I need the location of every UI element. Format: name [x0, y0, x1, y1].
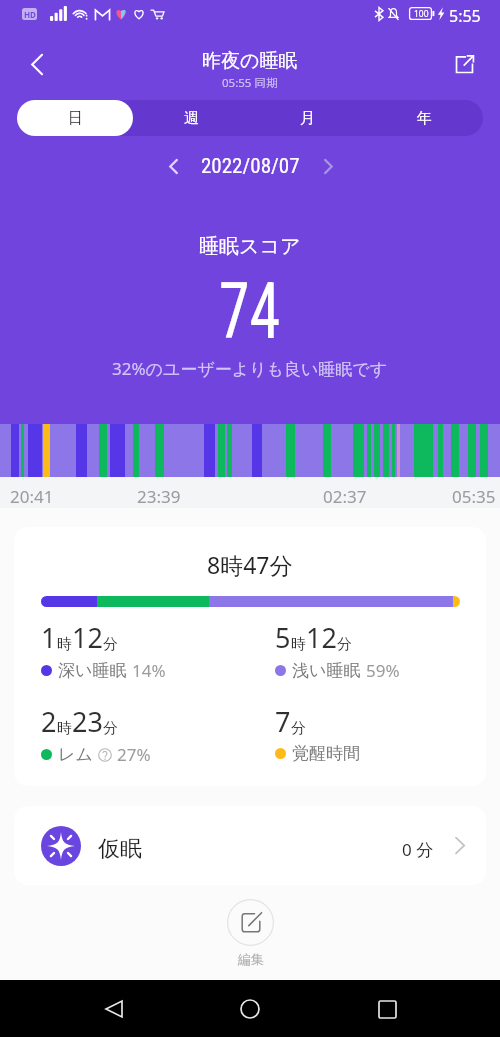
staticText: 分	[103, 635, 118, 654]
staticText: 睡眠スコア	[199, 234, 301, 259]
staticText: 5	[275, 619, 291, 656]
staticText: 32%のユーザーよりも良い睡眠です	[112, 357, 388, 380]
staticText: 分	[103, 719, 118, 738]
button[interactable]: 編集	[227, 899, 274, 967]
button[interactable]: 週	[133, 100, 249, 136]
button[interactable]: Recents	[364, 986, 410, 1032]
staticText: 14%	[132, 659, 166, 682]
staticText: 100	[414, 8, 429, 20]
staticText: 日	[68, 109, 83, 128]
staticText: 仮眠	[98, 835, 142, 863]
staticText: 浅い睡眠	[292, 660, 361, 681]
button[interactable]: Share	[442, 42, 486, 86]
staticText: 深い睡眠	[58, 660, 127, 681]
button[interactable]: 月	[249, 100, 366, 136]
staticText: 2022/08/07	[201, 154, 300, 179]
staticText: 週	[184, 109, 199, 128]
staticText: 7	[275, 703, 291, 740]
staticText: 1	[41, 619, 57, 656]
staticText: 74	[219, 266, 281, 357]
button[interactable]: Next day	[310, 148, 346, 184]
staticText: 5:55	[449, 5, 481, 27]
staticText: 05:55 同期	[222, 75, 278, 91]
staticText: 20:41	[10, 485, 54, 508]
staticText: 27%	[117, 743, 151, 766]
staticText: 2	[41, 703, 57, 740]
button[interactable]: Back	[15, 42, 59, 86]
staticText: 分	[291, 719, 306, 738]
staticText: 年	[417, 109, 432, 128]
staticText: 23:39	[137, 485, 181, 508]
button[interactable]: 仮眠	[14, 806, 486, 885]
button[interactable]: Back	[91, 986, 137, 1032]
staticText: 時	[57, 635, 72, 654]
staticText: 月	[300, 109, 315, 128]
staticText: 分	[337, 635, 352, 654]
staticText: レム	[58, 744, 93, 765]
button[interactable]: 年	[366, 100, 483, 136]
button[interactable]: 日	[17, 100, 133, 136]
staticText: 02:37	[323, 485, 367, 508]
staticText: 時	[57, 719, 72, 738]
staticText: 59%	[366, 659, 400, 682]
staticText: 昨夜の睡眠	[202, 49, 298, 73]
staticText: 8時47分	[207, 549, 293, 580]
staticText: 編集	[238, 951, 264, 967]
staticText: 時	[291, 635, 306, 654]
staticText: 12	[306, 619, 337, 656]
staticText: 05:35	[452, 485, 496, 508]
staticText: 覚醒時間	[292, 743, 360, 764]
staticText: 23	[72, 703, 103, 740]
staticText: 12	[72, 619, 103, 656]
button[interactable]: Home	[227, 986, 273, 1032]
button[interactable]: Previous day	[155, 148, 191, 184]
staticText: 0 分	[402, 838, 434, 861]
staticText: HD	[24, 9, 36, 20]
